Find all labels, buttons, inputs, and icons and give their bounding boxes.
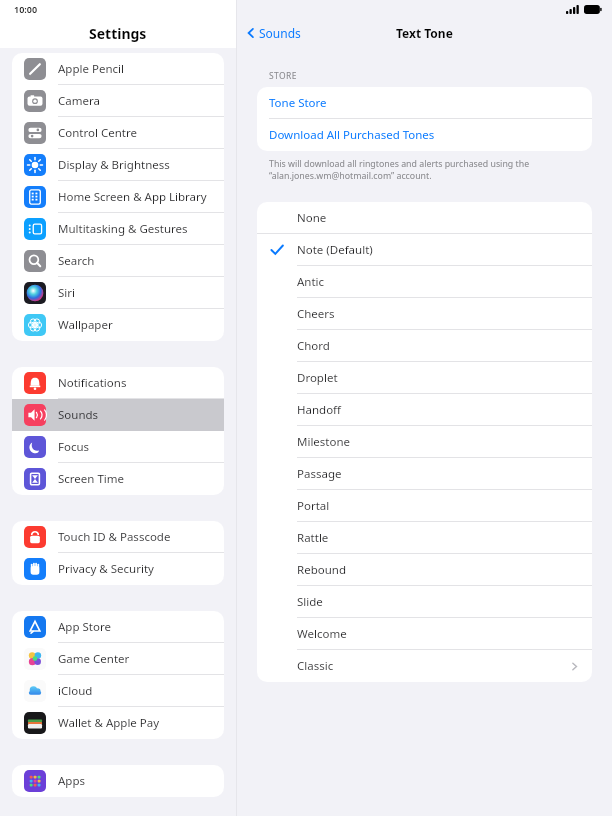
button[interactable]: Portal <box>257 490 592 522</box>
button[interactable]: Notifications <box>12 367 224 399</box>
button[interactable]: Rebound <box>257 554 592 586</box>
staticText: Droplet <box>297 370 338 386</box>
button[interactable]: Rattle <box>257 522 592 554</box>
staticText: Welcome <box>297 626 347 642</box>
staticText: Home Screen & App Library <box>58 189 207 205</box>
button[interactable]: Download All Purchased Tones <box>257 119 592 151</box>
button[interactable]: Back <box>245 25 301 41</box>
staticText: Wallet & Apple Pay <box>58 715 160 731</box>
staticText: Apps <box>58 773 86 789</box>
button[interactable]: Apps <box>12 765 224 797</box>
staticText: Slide <box>297 594 323 610</box>
staticText: Notifications <box>58 375 127 391</box>
staticText: Focus <box>58 439 90 455</box>
staticText: Milestone <box>297 434 351 450</box>
staticText: Chord <box>297 338 330 354</box>
button[interactable]: Handoff <box>257 394 592 426</box>
button[interactable]: Privacy & Security <box>12 553 224 585</box>
staticText: Rattle <box>297 530 329 546</box>
button[interactable]: App Store <box>12 611 224 643</box>
button[interactable]: Search <box>12 245 224 277</box>
staticText: Privacy & Security <box>58 561 154 577</box>
button[interactable]: Siri <box>12 277 224 309</box>
button[interactable]: Slide <box>257 586 592 618</box>
button[interactable]: Chord <box>257 330 592 362</box>
staticText: Screen Time <box>58 471 125 487</box>
staticText: Download All Purchased Tones <box>269 127 435 143</box>
button[interactable]: Antic <box>257 266 592 298</box>
button[interactable]: Focus <box>12 431 224 463</box>
button[interactable]: Home Screen & App Library <box>12 181 224 213</box>
button[interactable]: Droplet <box>257 362 592 394</box>
button[interactable]: Multitasking & Gestures <box>12 213 224 245</box>
staticText: iCloud <box>58 683 93 699</box>
staticText: Camera <box>58 93 100 109</box>
staticText: STORE <box>269 70 297 82</box>
staticText: Multitasking & Gestures <box>58 221 188 237</box>
staticText: Cheers <box>297 306 335 322</box>
staticText: Control Centre <box>58 125 137 141</box>
button[interactable]: Display & Brightness <box>12 149 224 181</box>
button[interactable]: Wallet & Apple Pay <box>12 707 224 739</box>
button[interactable]: Note (Default) <box>257 234 592 266</box>
staticText: Settings <box>89 24 147 43</box>
staticText: Sounds <box>58 407 99 423</box>
button[interactable]: Cheers <box>257 298 592 330</box>
button[interactable]: Touch ID & Passcode <box>12 521 224 553</box>
staticText: Rebound <box>297 562 346 578</box>
button[interactable]: Wallpaper <box>12 309 224 341</box>
staticText: App Store <box>58 619 111 635</box>
staticText: Game Center <box>58 651 130 667</box>
staticText: Display & Brightness <box>58 157 170 173</box>
staticText: None <box>297 210 327 226</box>
staticText: Siri <box>58 285 75 301</box>
button[interactable]: None <box>257 202 592 234</box>
button[interactable]: Game Center <box>12 643 224 675</box>
button[interactable]: Apple Pencil <box>12 53 224 85</box>
staticText: Text Tone <box>396 25 453 41</box>
other: Back <box>245 27 257 39</box>
staticText: Apple Pencil <box>58 61 124 77</box>
staticText: Touch ID & Passcode <box>58 529 171 545</box>
button[interactable]: Control Centre <box>12 117 224 149</box>
button[interactable]: Screen Time <box>12 463 224 495</box>
staticText: Passage <box>297 466 342 482</box>
button[interactable]: Welcome <box>257 618 592 650</box>
staticText: Sounds <box>259 25 301 41</box>
button[interactable]: Tone Store <box>257 87 592 119</box>
staticText: 10:00 <box>14 3 38 15</box>
staticText: This will download all ringtones and ale… <box>269 158 530 182</box>
staticText: Antic <box>297 274 325 290</box>
staticText: Note (Default) <box>297 242 373 258</box>
button[interactable]: iCloud <box>12 675 224 707</box>
staticText: Wallpaper <box>58 317 113 333</box>
button[interactable]: Camera <box>12 85 224 117</box>
staticText: Classic <box>297 658 334 674</box>
staticText: Search <box>58 253 95 269</box>
button[interactable]: Classic <box>257 650 592 682</box>
staticText: Tone Store <box>269 95 327 111</box>
button[interactable]: Passage <box>257 458 592 490</box>
staticText: Portal <box>297 498 330 514</box>
button[interactable]: Sounds <box>12 399 224 431</box>
staticText: Handoff <box>297 402 342 418</box>
button[interactable]: Milestone <box>257 426 592 458</box>
